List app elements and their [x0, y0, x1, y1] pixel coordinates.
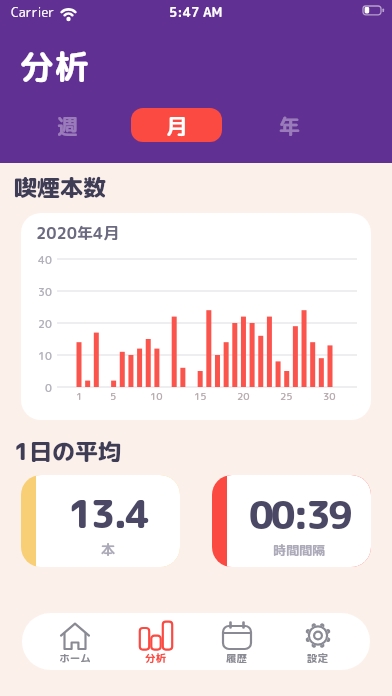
- staticText: 20: [237, 389, 250, 403]
- button[interactable]: 分析: [115, 613, 196, 670]
- staticText: 00:39: [249, 488, 350, 541]
- button[interactable]: 年: [238, 108, 340, 142]
- staticText: 1日の平均: [14, 435, 121, 467]
- button[interactable]: 履歴: [196, 613, 277, 670]
- staticText: 5: [110, 389, 117, 403]
- staticText: 13.4: [68, 487, 148, 540]
- staticText: 喫煙本数: [14, 171, 106, 203]
- staticText: 履歴: [226, 651, 247, 666]
- staticText: 10: [38, 348, 52, 363]
- staticText: 30: [38, 284, 52, 299]
- staticText: Carrier: [11, 3, 55, 21]
- button[interactable]: 月: [131, 108, 222, 142]
- staticText: 10: [150, 389, 163, 403]
- staticText: 1: [76, 389, 83, 403]
- staticText: 本: [101, 540, 115, 560]
- button[interactable]: ホーム: [34, 613, 115, 670]
- staticText: 25: [280, 389, 293, 403]
- staticText: ホーム: [59, 651, 91, 666]
- staticText: 分析: [20, 42, 88, 86]
- button[interactable]: 13.4: [21, 475, 180, 567]
- button[interactable]: 設定: [277, 613, 358, 670]
- staticText: 月: [166, 111, 187, 140]
- staticText: 5:47 AM: [169, 3, 223, 21]
- staticText: 週: [57, 111, 78, 140]
- staticText: 分析: [145, 651, 166, 666]
- staticText: 20: [38, 316, 52, 331]
- staticText: 40: [38, 252, 52, 267]
- staticText: 30: [323, 389, 336, 403]
- button[interactable]: 週: [16, 108, 118, 142]
- staticText: 0: [45, 380, 52, 395]
- button[interactable]: 00:39: [212, 475, 371, 567]
- staticText: 2020年4月: [36, 222, 120, 242]
- staticText: 時間間隔: [273, 541, 326, 559]
- staticText: 設定: [307, 651, 328, 666]
- staticText: 年: [279, 111, 300, 140]
- staticText: 15: [194, 389, 207, 403]
